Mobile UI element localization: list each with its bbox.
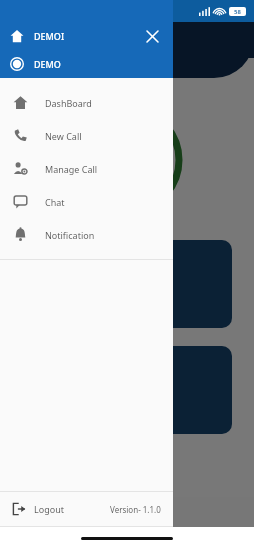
button[interactable]: Close drawer [141, 25, 163, 47]
staticText: Manage Call [45, 163, 98, 175]
staticText: DashBoard [45, 97, 92, 109]
staticText: Chat [45, 196, 65, 208]
button[interactable]: DashBoard [0, 86, 173, 119]
button[interactable]: Logout [0, 492, 173, 526]
staticText: 58 [234, 8, 241, 16]
staticText: PROLOGIC [90, 506, 137, 518]
button[interactable]: Manage Call [0, 152, 173, 185]
staticText: Logout [34, 503, 64, 515]
staticText: New Call [45, 130, 82, 142]
staticText: Notification [45, 229, 95, 241]
button[interactable]: DEMOI [0, 22, 173, 50]
button[interactable]: Completed Calls [22, 346, 232, 434]
button[interactable]: Open Incidents [22, 240, 232, 328]
button[interactable]: DEMO [0, 50, 173, 78]
staticText: DEMO [34, 58, 61, 70]
button[interactable]: New Call [0, 119, 173, 152]
button[interactable]: Notification [0, 218, 173, 251]
staticText: FIRST [137, 506, 164, 518]
staticText: Version- 1.1.0 [110, 504, 161, 515]
staticText: DEMOI [34, 30, 65, 42]
button[interactable]: Chat [0, 185, 173, 218]
